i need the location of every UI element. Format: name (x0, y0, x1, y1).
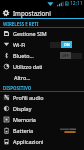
staticText: Batteria (13, 127, 34, 134)
staticText: Altro... (14, 74, 31, 81)
staticText: Bluetooth (13, 52, 36, 59)
staticText: Memoria (13, 116, 36, 123)
staticText: OFF (62, 53, 69, 58)
button[interactable]: Wi-Fi (0, 39, 84, 50)
staticText: Profili audio (13, 94, 44, 101)
button[interactable]: Utilizzo dati (0, 61, 84, 72)
staticText: DISPOSITIVO (3, 85, 32, 91)
staticText: 12:11 (70, 0, 83, 7)
staticText: Wi-Fi (13, 41, 26, 48)
button[interactable]: Gestione SIM (0, 28, 84, 39)
staticText: Impostazioni (13, 9, 51, 17)
staticText: Display (13, 105, 32, 112)
staticText: Utilizzo dati (13, 63, 43, 70)
button[interactable]: Disattivo (60, 52, 82, 59)
button[interactable]: Display (0, 103, 84, 114)
button[interactable]: Altro... (0, 72, 84, 83)
staticText: Gestione SIM (13, 30, 47, 37)
button[interactable]: Applicazioni (0, 136, 84, 147)
staticText: ON (64, 42, 70, 47)
button[interactable]: Bluetooth (0, 50, 84, 61)
button[interactable]: Memoria (0, 114, 84, 125)
button[interactable]: Attivo (50, 41, 72, 48)
button[interactable]: Profili audio (0, 92, 84, 103)
staticText: Applicazioni (13, 138, 44, 145)
staticText: WIRELESS E RETI (3, 21, 39, 27)
button[interactable]: Batteria (0, 125, 84, 136)
